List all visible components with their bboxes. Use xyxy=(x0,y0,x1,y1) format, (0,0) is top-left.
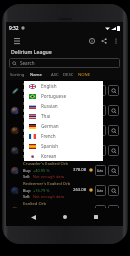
button[interactable]: Auto xyxy=(95,85,106,96)
staticText: Buy: xyxy=(23,108,31,113)
button[interactable]: Exalted Orb xyxy=(6,200,123,220)
button[interactable]: NONE xyxy=(77,72,91,78)
button[interactable]: Search item xyxy=(108,185,119,196)
button[interactable]: Search item xyxy=(108,205,119,216)
staticText: Not enough data xyxy=(33,114,65,119)
staticText: Crusader's Exalted Orb xyxy=(23,161,69,167)
staticText: English xyxy=(41,83,57,89)
staticText: ASC xyxy=(51,72,59,78)
staticText: -1.20 % xyxy=(33,108,47,113)
staticText: Not enough data xyxy=(33,194,65,199)
button[interactable]: Name xyxy=(30,72,42,78)
button[interactable]: Search item xyxy=(108,105,119,116)
button[interactable]: Portuguese xyxy=(24,91,103,101)
button[interactable]: Crusader's Exalted Orb xyxy=(6,160,123,180)
staticText: Sell: xyxy=(23,134,31,139)
staticText: Russian xyxy=(41,103,58,109)
button[interactable]: Search item xyxy=(108,165,119,176)
staticText: Buy: xyxy=(23,128,31,133)
button[interactable]: Home xyxy=(58,210,72,224)
button[interactable]: Chaos Orb xyxy=(6,120,123,140)
button[interactable]: Korean xyxy=(24,151,103,161)
staticText: NONE xyxy=(78,72,90,78)
staticText: Auto xyxy=(97,129,104,133)
staticText: +0.00 % xyxy=(33,148,48,153)
staticText: Blessed Orb xyxy=(23,101,47,107)
staticText: 263.08 xyxy=(73,187,87,193)
staticText: Auto xyxy=(97,169,104,173)
button[interactable]: Auto xyxy=(95,105,106,116)
button[interactable]: Russian xyxy=(24,101,103,111)
staticText: Portuguese xyxy=(41,93,66,99)
button[interactable]: Auto xyxy=(95,205,106,216)
button[interactable]: Recents xyxy=(89,210,103,224)
staticText: Not enough data xyxy=(33,94,65,99)
button[interactable]: Auto xyxy=(95,185,106,196)
staticText: Not enough data xyxy=(33,154,65,159)
button[interactable]: Info xyxy=(86,35,98,47)
staticText: Auto xyxy=(97,89,104,93)
staticText: Sell: xyxy=(23,194,31,199)
staticText: Sell: xyxy=(23,174,31,179)
button[interactable]: English xyxy=(24,81,103,91)
button[interactable]: Chromatic Orb xyxy=(6,140,123,160)
staticText: DESC xyxy=(63,72,74,78)
staticText: Not enough data xyxy=(33,134,65,139)
staticText: Korean xyxy=(41,153,57,159)
staticText: French xyxy=(41,133,56,139)
staticText: 9:32 xyxy=(9,25,19,32)
staticText: Not enough data xyxy=(33,174,65,179)
button[interactable]: DESC xyxy=(62,72,75,78)
staticText: Sorting xyxy=(10,72,25,78)
staticText: Auto xyxy=(97,189,104,193)
button[interactable]: Search item xyxy=(108,145,119,156)
button[interactable]: Auto xyxy=(95,125,106,136)
staticText: Exalted Orb xyxy=(23,201,47,207)
button[interactable]: Auto xyxy=(95,145,106,156)
button[interactable]: Search xyxy=(9,58,120,68)
button[interactable]: More options xyxy=(110,35,122,47)
staticText: Sell: xyxy=(23,94,31,99)
staticText: Sell: xyxy=(23,154,31,159)
staticText: Spanish xyxy=(41,143,58,149)
staticText: Redeemer's Exalted Orb xyxy=(23,181,71,187)
staticText: Chromatic Orb xyxy=(23,141,52,147)
button[interactable]: Spanish xyxy=(24,141,103,151)
staticText: 378.08 xyxy=(73,167,87,173)
staticText: Name xyxy=(30,72,42,78)
staticText: Buy: xyxy=(23,148,31,153)
staticText: Search xyxy=(20,60,35,66)
button[interactable]: Awakener's Orb xyxy=(6,80,123,100)
button[interactable]: Back xyxy=(26,210,40,224)
button[interactable]: French xyxy=(24,131,103,141)
staticText: Sell: xyxy=(23,114,31,119)
button[interactable]: Share xyxy=(98,35,110,47)
button[interactable]: Search item xyxy=(108,125,119,136)
staticText: Auto xyxy=(97,109,104,113)
staticText: Awakener's Orb xyxy=(23,81,55,87)
staticText: +2.45 % xyxy=(33,88,48,93)
button[interactable]: Auto xyxy=(95,165,106,176)
staticText: +0.15 % xyxy=(33,128,48,133)
button[interactable]: Blessed Orb xyxy=(6,100,123,120)
button[interactable]: Thai xyxy=(24,111,103,121)
staticText: Auto xyxy=(97,149,104,153)
button[interactable]: Redeemer's Exalted Orb xyxy=(6,180,123,200)
staticText: Buy: xyxy=(23,88,31,93)
button[interactable]: Search item xyxy=(108,85,119,96)
button[interactable]: German xyxy=(24,121,103,131)
staticText: +40.95 % xyxy=(33,168,50,173)
staticText: German xyxy=(41,123,59,129)
staticText: Buy: xyxy=(23,168,31,173)
button[interactable]: ASC xyxy=(50,72,60,78)
button[interactable]: Navigation menu xyxy=(11,35,23,47)
